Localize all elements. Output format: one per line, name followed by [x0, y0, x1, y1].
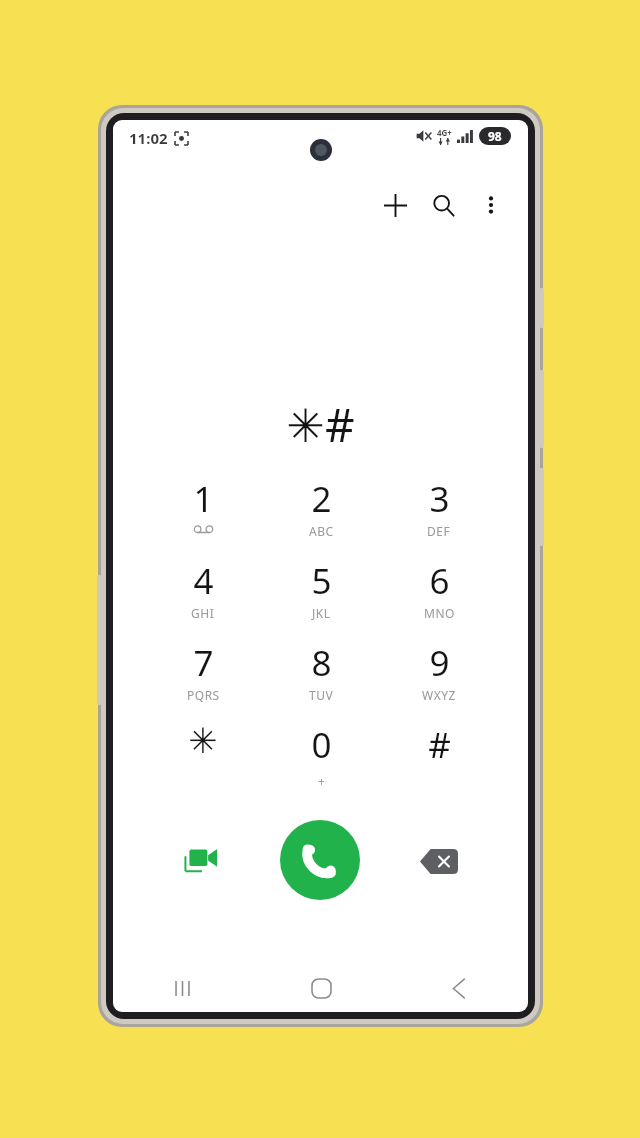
button[interactable]: 8 [262, 639, 380, 721]
staticText: 4 [193, 557, 214, 605]
button[interactable]: 2 [262, 475, 380, 557]
staticText: 5 [311, 557, 332, 605]
button[interactable]: 5 [262, 557, 380, 639]
button[interactable]: Add contact [372, 182, 418, 228]
button[interactable]: 4 [144, 557, 262, 639]
button[interactable]: Search [420, 182, 466, 228]
staticText: ABC [309, 523, 334, 539]
staticText: 98 [488, 128, 502, 144]
button[interactable]: 7 [144, 639, 262, 721]
button[interactable]: # [380, 721, 498, 803]
button[interactable]: Back [413, 965, 505, 1011]
staticText: 7 [193, 639, 214, 687]
button[interactable]: More options [468, 182, 514, 228]
staticText: 11:02 [129, 128, 168, 148]
staticText: 4G+ [437, 127, 452, 138]
staticText: JKL [312, 605, 331, 621]
button[interactable]: 9 [380, 639, 498, 721]
staticText: MNO [424, 605, 455, 621]
button[interactable]: Home [275, 965, 367, 1011]
staticText: WXYZ [422, 687, 456, 703]
button[interactable]: Video call [177, 836, 227, 886]
staticText: + [318, 773, 326, 789]
staticText: 3 [429, 475, 450, 523]
staticText: 1 [193, 475, 214, 523]
button[interactable]: Call [280, 820, 360, 900]
staticText: DEF [427, 523, 451, 539]
button[interactable]: 3 [380, 475, 498, 557]
button[interactable]: Recent apps [136, 965, 228, 1011]
staticText: 2 [311, 475, 332, 523]
staticText: TUV [309, 687, 334, 703]
button[interactable]: Backspace [414, 836, 464, 886]
staticText: GHI [191, 605, 215, 621]
staticText: ✳# [286, 393, 355, 456]
staticText: 8 [311, 639, 332, 687]
staticText: PQRS [187, 687, 220, 703]
staticText: # [428, 721, 451, 769]
staticText: 9 [429, 639, 450, 687]
button[interactable]: 6 [380, 557, 498, 639]
staticText: 0 [311, 721, 332, 769]
staticText: ✳ [188, 721, 218, 762]
button[interactable]: ✳ [144, 721, 262, 803]
button[interactable]: 0 [262, 721, 380, 803]
staticText: 6 [429, 557, 450, 605]
button[interactable]: 1 [144, 475, 262, 557]
